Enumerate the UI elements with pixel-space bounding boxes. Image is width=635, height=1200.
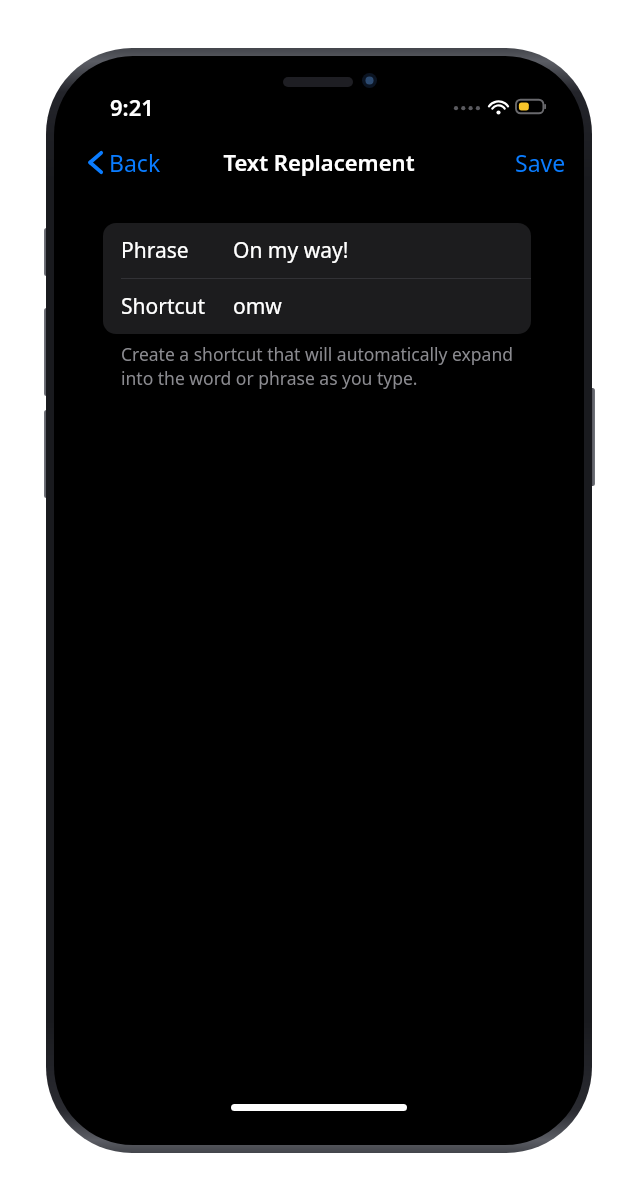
button[interactable]: Save [509,141,572,184]
button[interactable]: Shortcut [103,279,531,334]
staticText: Shortcut [121,292,233,321]
staticText: Phrase [121,236,233,265]
staticText: Text Replacement [223,147,415,177]
staticText: omw [233,292,282,321]
button[interactable]: Back [84,142,165,183]
staticText: On my way! [233,236,349,265]
staticText: 9:21 [110,92,154,122]
button[interactable]: Phrase [103,223,531,278]
staticText: Create a shortcut that will automaticall… [121,342,514,366]
staticText: Back [109,147,161,178]
staticText: Save [515,147,566,178]
staticText: into the word or phrase as you type. [121,366,418,390]
